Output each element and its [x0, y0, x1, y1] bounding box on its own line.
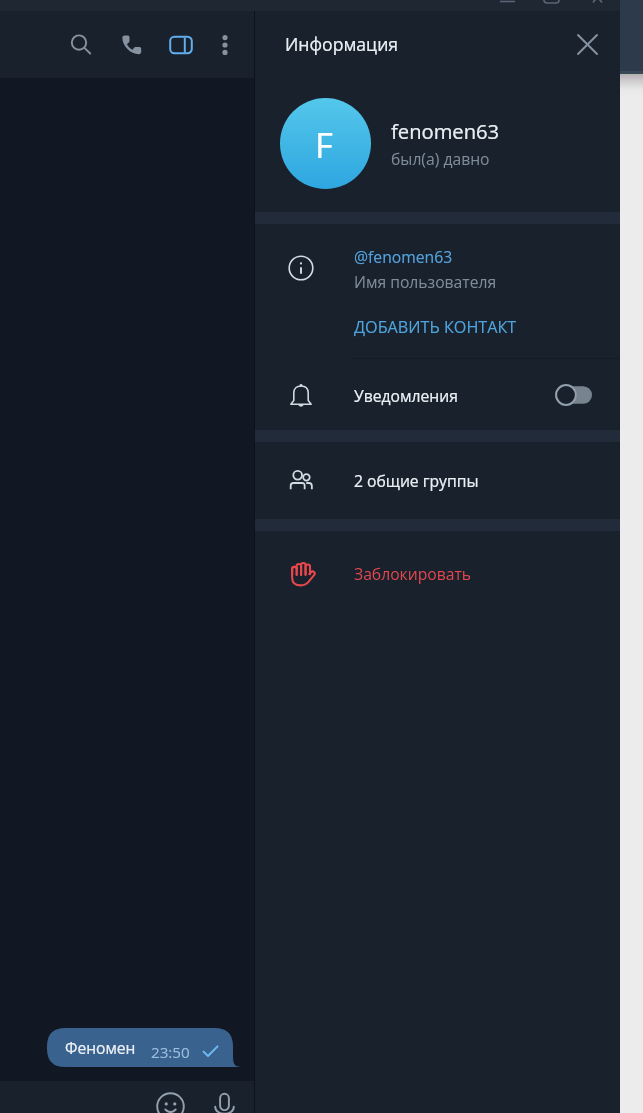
staticText: 2 общие группы — [354, 470, 479, 491]
staticText: Имя пользователя — [354, 271, 497, 292]
staticText: @fenomen63 — [354, 246, 453, 267]
staticText: Феномен — [65, 1037, 136, 1058]
button[interactable]: Emoji — [150, 1082, 191, 1113]
staticText: 23:50 — [151, 1042, 190, 1063]
button[interactable]: Search — [57, 21, 105, 69]
button[interactable]: 2 общие группы — [255, 442, 620, 519]
staticText: F — [315, 121, 333, 168]
button[interactable]: Maximize — [534, 0, 574, 11]
button[interactable]: Toggle info panel — [157, 21, 205, 69]
staticText: был(а) давно — [391, 148, 490, 169]
button[interactable]: Record voice message — [204, 1082, 245, 1113]
button[interactable]: ДОБАВИТЬ КОНТАКТ — [255, 312, 620, 358]
staticText: Уведомления — [354, 385, 458, 406]
button[interactable]: More options — [201, 21, 249, 69]
staticText: Информация — [285, 32, 399, 56]
button[interactable]: Close information panel — [564, 21, 610, 67]
button[interactable]: @fenomen63 — [255, 224, 620, 312]
staticText: ДОБАВИТЬ КОНТАКТ — [354, 316, 517, 338]
button[interactable]: Уведомления — [255, 359, 620, 430]
button[interactable]: Minimize — [488, 0, 528, 11]
button[interactable]: Call — [107, 21, 155, 69]
button[interactable]: Notifications toggle — [555, 384, 592, 406]
staticText: Заблокировать — [354, 563, 472, 584]
button[interactable]: F — [255, 78, 620, 212]
staticText: fenomen63 — [391, 117, 500, 145]
button[interactable]: Заблокировать — [255, 531, 620, 615]
button[interactable]: Close — [578, 0, 618, 11]
